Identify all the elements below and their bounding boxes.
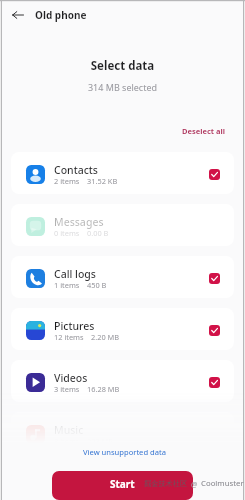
staticText: Messages xyxy=(54,215,104,229)
staticText: 3 items xyxy=(54,384,80,394)
staticText: Music xyxy=(54,423,84,437)
staticText: 314 MB selected xyxy=(0,81,245,93)
button[interactable]: Messages xyxy=(11,204,234,246)
staticText: Deselect all xyxy=(182,126,225,136)
button[interactable]: View unsupported data xyxy=(71,444,174,460)
button[interactable]: Select Call logs xyxy=(209,273,220,284)
staticText: 12 items xyxy=(54,332,84,342)
staticText: Contacts xyxy=(54,163,98,177)
staticText: Start xyxy=(110,477,135,491)
staticText: 31.52 KB xyxy=(87,176,118,186)
button[interactable]: Pictures xyxy=(11,308,234,350)
button[interactable]: Back xyxy=(0,0,36,30)
button[interactable]: Select Contacts xyxy=(209,169,220,180)
staticText: Coolmuster xyxy=(201,478,244,489)
staticText: 0 items xyxy=(54,228,80,238)
button[interactable]: Select Videos xyxy=(209,377,220,388)
staticText: 450 B xyxy=(87,280,107,290)
staticText: 2.20 MB xyxy=(91,332,120,342)
button[interactable]: Deselect all xyxy=(170,122,245,140)
staticText: 2 items xyxy=(54,176,80,186)
staticText: Call logs xyxy=(54,267,96,281)
staticText: 16.28 MB xyxy=(87,384,120,394)
button[interactable]: Call logs xyxy=(11,256,234,298)
button[interactable]: Select Pictures xyxy=(209,325,220,336)
button[interactable]: Videos xyxy=(11,360,234,402)
staticText: 0.00 B xyxy=(87,228,109,238)
staticText: 掘金技术社区 xyxy=(144,479,188,488)
staticText: 1 items xyxy=(54,280,80,290)
staticText: Videos xyxy=(54,371,88,385)
button[interactable]: Music xyxy=(11,412,234,454)
staticText: Old phone xyxy=(35,8,87,22)
staticText: Pictures xyxy=(54,319,95,333)
staticText: Select data xyxy=(0,58,245,74)
staticText: @ xyxy=(191,479,198,489)
staticText: View unsupported data xyxy=(83,447,166,457)
button[interactable]: Start xyxy=(52,471,193,500)
button[interactable]: Contacts xyxy=(11,152,234,194)
